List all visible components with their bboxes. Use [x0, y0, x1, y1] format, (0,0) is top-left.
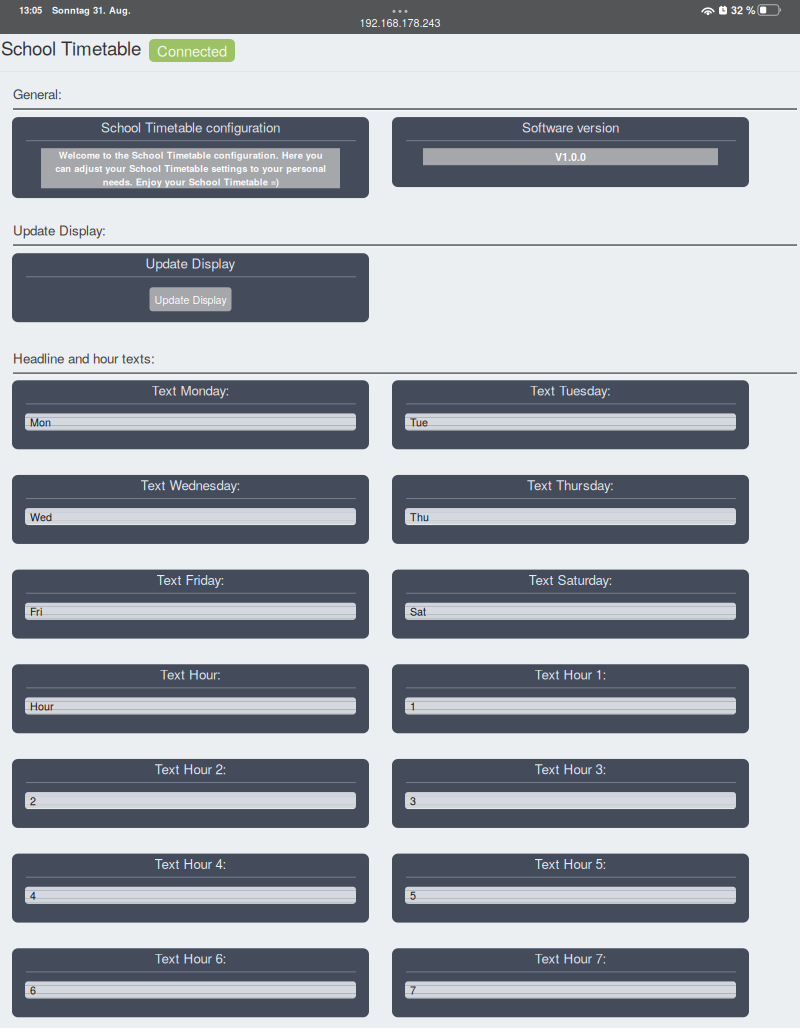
staticText: Text Monday: [151, 380, 229, 399]
staticText: Hour [30, 698, 54, 713]
staticText: V1.0.0 [555, 149, 586, 164]
staticText: General: [13, 84, 62, 103]
staticText: Thu [410, 509, 429, 524]
staticText: Software version [522, 117, 619, 136]
staticText: Text Hour: [160, 664, 221, 683]
staticText: Text Hour 2: [154, 759, 226, 778]
staticText: Text Hour 1: [534, 664, 606, 683]
staticText: Text Hour 6: [154, 948, 226, 967]
staticText: Update Display [154, 292, 226, 307]
staticText: 2 [30, 793, 36, 808]
button[interactable]: Text Hour 5: [392, 854, 749, 923]
button[interactable]: Text Hour 4: [12, 854, 369, 923]
staticText: Text Hour 5: [534, 854, 606, 873]
staticText: Sat [410, 604, 426, 619]
button[interactable]: Text Wednesday: [12, 475, 369, 544]
staticText: 13:05 [19, 3, 42, 17]
staticText: Wed [30, 509, 52, 524]
staticText: Sonntag 31. Aug. [52, 3, 131, 17]
staticText: Fri [30, 604, 42, 619]
button[interactable]: Text Hour 6: [12, 948, 369, 1017]
staticText: Headline and hour texts: [13, 348, 155, 367]
staticText: 6 [30, 982, 36, 998]
staticText: 1 [410, 698, 416, 713]
staticText: 32 % [731, 2, 755, 18]
staticText: Text Tuesday: [530, 380, 611, 399]
staticText: 5 [410, 888, 416, 903]
button[interactable]: Update Display [149, 287, 231, 311]
staticText: Update Display: [13, 220, 106, 239]
button[interactable]: Text Thursday: [392, 475, 749, 544]
staticText: Tue [410, 414, 428, 429]
staticText: Welcome to the School Timetable configur… [55, 148, 326, 188]
staticText: Text Friday: [156, 570, 224, 589]
staticText: 192.168.178.243 [359, 15, 440, 30]
button[interactable]: Text Hour 1: [392, 664, 749, 733]
staticText: School Timetable configuration [101, 117, 280, 136]
button[interactable]: Text Friday: [12, 570, 369, 639]
staticText: Text Hour 4: [154, 854, 226, 873]
staticText: Mon [30, 414, 51, 429]
staticText: 7 [410, 982, 416, 998]
staticText: Text Saturday: [528, 570, 612, 589]
button[interactable]: Text Hour 3: [392, 759, 749, 828]
button[interactable]: Text Hour 2: [12, 759, 369, 828]
button[interactable]: Text Hour: [12, 664, 369, 733]
staticText: Text Hour 3: [534, 759, 606, 778]
button[interactable]: Connected [149, 39, 235, 62]
button[interactable]: Text Monday: [12, 380, 369, 449]
button[interactable]: Text Tuesday: [392, 380, 749, 449]
staticText: Update Display [145, 253, 235, 272]
staticText: Text Wednesday: [140, 475, 240, 494]
staticText: 4 [30, 888, 36, 903]
button[interactable]: Text Hour 7: [392, 948, 749, 1017]
staticText: Connected [157, 40, 227, 61]
staticText: Text Thursday: [527, 475, 614, 494]
staticText: 3 [410, 793, 416, 808]
staticText: Text Hour 7: [534, 948, 606, 967]
button[interactable]: Text Saturday: [392, 570, 749, 639]
staticText: School Timetable [1, 34, 141, 61]
